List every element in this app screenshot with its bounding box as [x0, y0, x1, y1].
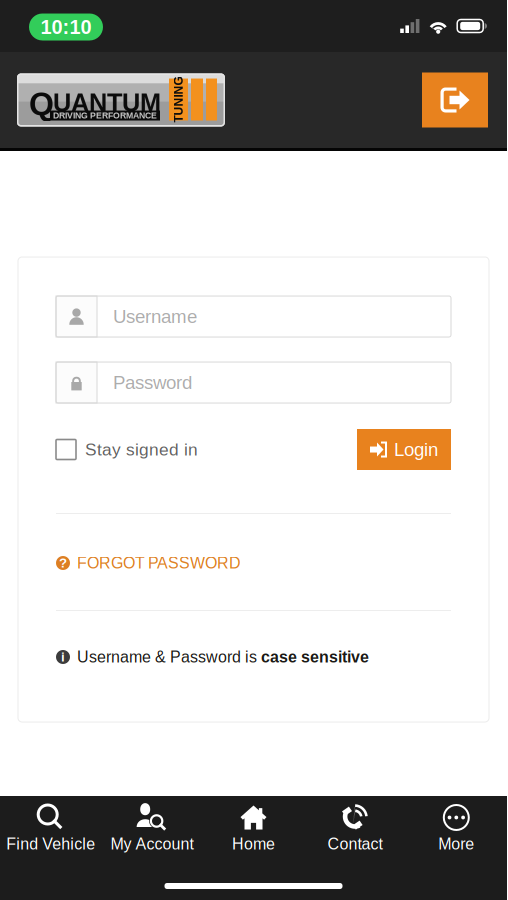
staticText: Username	[113, 306, 197, 327]
button[interactable]: More	[406, 800, 507, 857]
staticText: i	[61, 650, 65, 664]
button[interactable]: Stay signed in	[56, 429, 198, 470]
staticText: Username & Password is case sensitive	[77, 648, 369, 666]
staticText: More	[438, 835, 474, 853]
staticText: Home	[232, 835, 275, 853]
staticText: Password	[113, 372, 192, 393]
staticText: Find Vehicle	[6, 835, 95, 853]
button[interactable]: Find Vehicle	[0, 800, 101, 857]
button[interactable]: Login	[357, 429, 451, 470]
staticText: TUNING	[155, 93, 201, 106]
staticText: My Account	[111, 835, 194, 853]
staticText: ?	[59, 556, 67, 570]
button[interactable]: My Account	[101, 800, 203, 857]
staticText: UANTUM	[53, 88, 161, 117]
staticText: DRIVING PERFORMANCE	[53, 111, 157, 120]
staticText: Q	[29, 85, 54, 121]
button[interactable]: Log out	[422, 72, 488, 127]
staticText: Contact	[327, 835, 382, 853]
staticText: Stay signed in	[85, 440, 198, 459]
button[interactable]: ?	[56, 544, 241, 582]
staticText: Login	[394, 439, 438, 460]
button[interactable]: Home	[203, 800, 304, 857]
staticText: FORGOT PASSWORD	[77, 554, 241, 572]
button[interactable]: Contact	[304, 800, 406, 857]
staticText: 10:10	[40, 16, 91, 38]
